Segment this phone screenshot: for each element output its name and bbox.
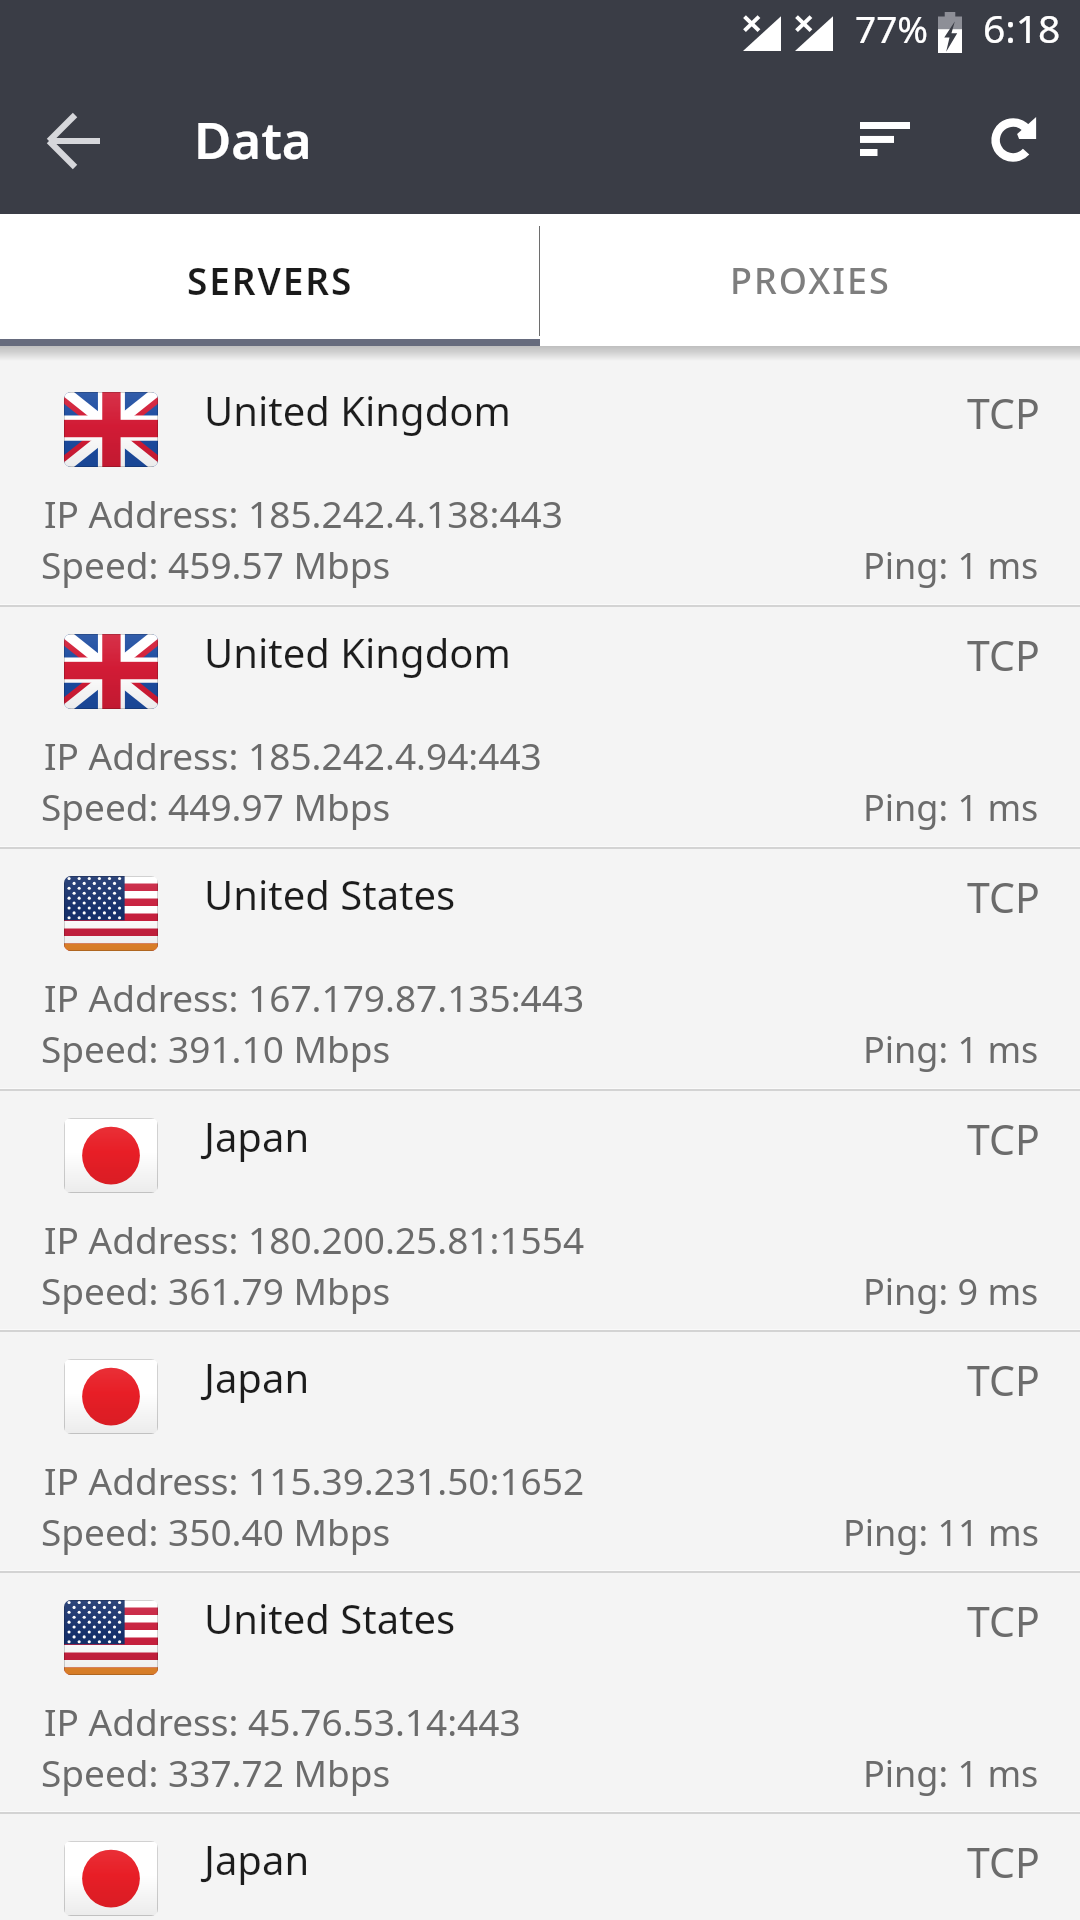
staticText: Japan [204,1832,310,1886]
staticText: Ping: 1 ms [863,1749,1039,1798]
button[interactable]: PROXIES [540,214,1080,346]
staticText: IP Address: 185.242.4.94:443 [44,730,542,780]
staticText: United Kingdom [204,383,511,437]
staticText: Speed: 350.40 Mbps [41,1506,391,1556]
staticText: TCP [967,1834,1040,1890]
staticText: United States [204,867,456,921]
staticText: Ping: 1 ms [863,1025,1039,1074]
staticText: Ping: 9 ms [863,1267,1039,1316]
button[interactable]: United Kingdom [0,607,1080,846]
staticText: TCP [967,1593,1040,1649]
button[interactable]: United States [0,849,1080,1088]
button[interactable]: Refresh [966,90,1066,190]
button[interactable]: Back [26,93,122,189]
staticText: Data [194,104,312,173]
button[interactable]: United States [0,1573,1080,1812]
staticText: Japan [204,1350,310,1404]
staticText: TCP [967,385,1040,441]
button[interactable]: SERVERS [0,214,540,346]
staticText: IP Address: 115.39.231.50:1652 [44,1455,585,1505]
staticText: 6:18 [983,1,1061,54]
staticText: TCP [967,869,1040,925]
staticText: Japan [204,1109,310,1163]
staticText: United Kingdom [204,625,511,679]
staticText: IP Address: 167.179.87.135:443 [44,972,585,1022]
staticText: Speed: 337.72 Mbps [41,1747,391,1797]
button[interactable]: Japan [0,1332,1080,1571]
staticText: TCP [967,627,1040,683]
staticText: PROXIES [730,256,891,305]
staticText: TCP [967,1111,1040,1167]
staticText: Ping: 11 ms [843,1508,1039,1557]
button[interactable]: Sort [835,89,935,189]
staticText: 77% [855,3,929,53]
staticText: TCP [967,1352,1040,1408]
staticText: Speed: 361.79 Mbps [41,1265,391,1315]
staticText: Ping: 1 ms [863,783,1039,832]
button[interactable]: Japan [0,1814,1080,1920]
staticText: Ping: 1 ms [863,541,1039,590]
staticText: SERVERS [187,255,354,305]
staticText: Speed: 459.57 Mbps [41,539,391,589]
staticText: IP Address: 180.200.25.81:1554 [44,1214,585,1264]
staticText: IP Address: 185.242.4.138:443 [44,488,563,538]
staticText: Speed: 391.10 Mbps [41,1023,391,1073]
staticText: United States [204,1591,456,1645]
staticText: IP Address: 45.76.53.14:443 [44,1696,521,1746]
button[interactable]: United Kingdom [0,365,1080,604]
button[interactable]: Japan [0,1091,1080,1330]
staticText: Speed: 449.97 Mbps [41,781,391,831]
